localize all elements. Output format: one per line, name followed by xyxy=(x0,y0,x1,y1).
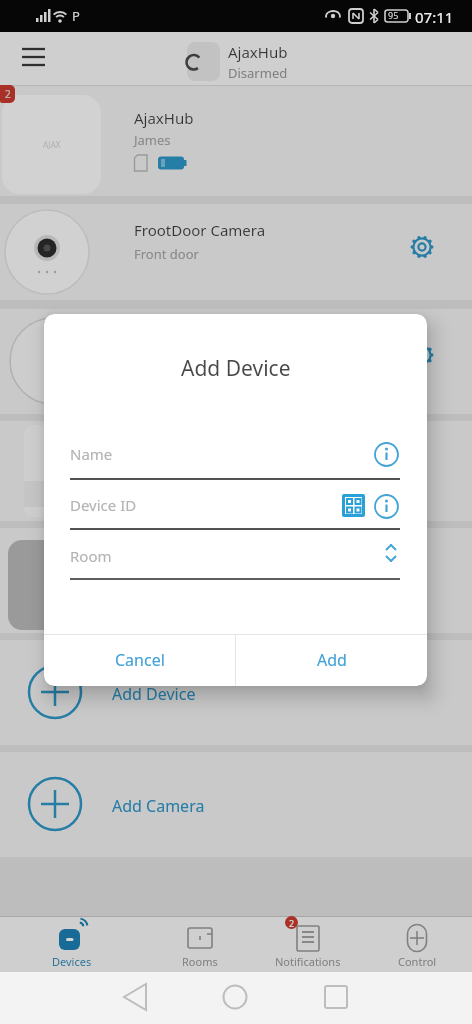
button[interactable]: AjaxHub xyxy=(180,32,350,86)
button[interactable]: Rooms xyxy=(150,917,250,972)
staticText: 2 xyxy=(5,87,11,101)
staticText: AJAX xyxy=(43,139,61,150)
button[interactable] xyxy=(374,494,399,519)
button[interactable] xyxy=(383,542,399,564)
staticText: Disarmed xyxy=(228,64,288,82)
staticText: James xyxy=(134,131,171,149)
staticText: Rooms xyxy=(182,954,218,969)
staticText: Add Device xyxy=(112,683,196,705)
button[interactable] xyxy=(404,229,440,265)
staticText: Room xyxy=(70,546,112,566)
button[interactable] xyxy=(158,972,315,1024)
button[interactable]: FrootDoor Camera xyxy=(0,204,472,300)
button[interactable] xyxy=(404,337,440,373)
staticText: Device ID xyxy=(70,495,137,515)
staticText: Add xyxy=(317,649,347,671)
staticText: AjaxHub xyxy=(228,42,288,62)
staticText: Name xyxy=(70,444,113,464)
button[interactable] xyxy=(0,972,158,1024)
button[interactable]: Cancel xyxy=(44,634,235,686)
button[interactable]: Add Camera xyxy=(0,752,472,857)
button[interactable] xyxy=(0,32,60,86)
staticText: Control xyxy=(398,954,437,969)
staticText: FrootDoor Camera xyxy=(134,220,266,240)
staticText: 07:11 xyxy=(415,7,454,27)
button[interactable]: Control xyxy=(367,917,467,972)
staticText: P xyxy=(72,7,80,25)
button[interactable] xyxy=(374,442,399,467)
button[interactable] xyxy=(315,972,472,1024)
staticText: AjaxHub xyxy=(134,108,194,128)
button[interactable]: AJAX xyxy=(0,86,472,196)
button[interactable]: 2 xyxy=(258,917,358,972)
button[interactable]: Devices xyxy=(22,917,122,972)
staticText: Add Camera xyxy=(112,795,205,817)
staticText: 2 xyxy=(289,917,295,929)
staticText: Add Device xyxy=(181,354,291,383)
staticText: Cancel xyxy=(115,649,165,671)
staticText: Devices xyxy=(52,954,92,969)
staticText: Notifications xyxy=(275,954,341,969)
staticText: 95 xyxy=(388,9,399,21)
staticText: Front door xyxy=(134,245,199,263)
button[interactable] xyxy=(342,494,365,517)
button[interactable]: Add Device xyxy=(0,640,472,745)
button[interactable]: Add xyxy=(236,634,427,686)
